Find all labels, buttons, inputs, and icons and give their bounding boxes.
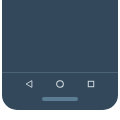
button[interactable]: Recent apps (82, 75, 100, 93)
button[interactable]: Home gesture indicator (42, 97, 78, 101)
button[interactable]: Home (51, 75, 69, 93)
button[interactable]: Back (20, 75, 38, 93)
